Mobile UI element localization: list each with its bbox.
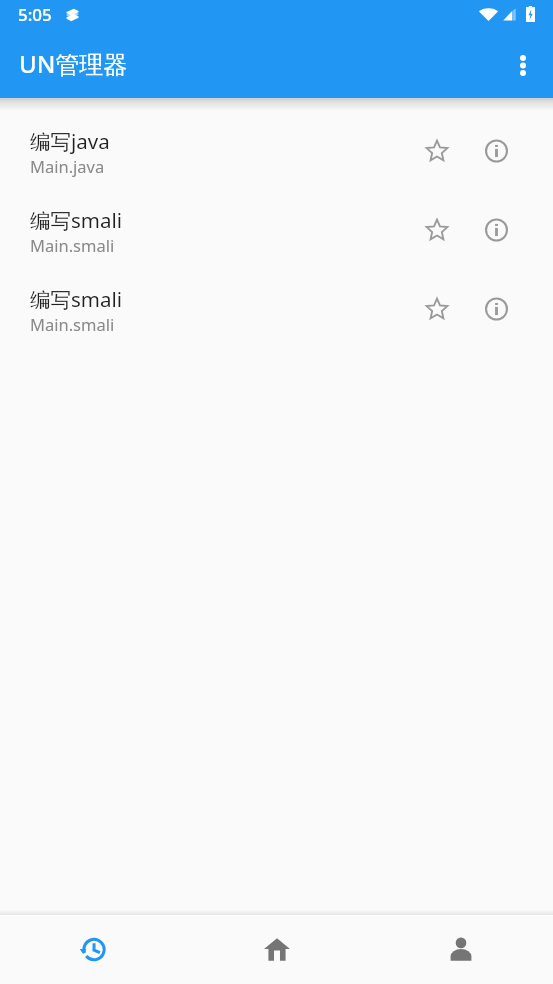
staticText: Main.smali bbox=[30, 313, 115, 335]
button[interactable]: Favorite bbox=[413, 207, 461, 255]
button[interactable]: History bbox=[0, 916, 185, 982]
staticText: 编写smali bbox=[30, 285, 123, 313]
button[interactable]: Profile bbox=[369, 916, 553, 982]
button[interactable]: Info bbox=[473, 128, 521, 176]
button[interactable]: More options bbox=[499, 41, 547, 89]
staticText: 编写java bbox=[30, 127, 110, 155]
button[interactable]: Info bbox=[473, 207, 521, 255]
button[interactable]: Info bbox=[473, 286, 521, 334]
button[interactable]: Favorite bbox=[413, 128, 461, 176]
staticText: Main.java bbox=[30, 155, 105, 177]
staticText: Main.smali bbox=[30, 234, 115, 256]
button[interactable]: Home bbox=[185, 916, 369, 982]
button[interactable]: 编写smali bbox=[0, 191, 553, 270]
staticText: UN管理器 bbox=[19, 47, 128, 80]
staticText: 编写smali bbox=[30, 206, 123, 234]
staticText: 5:05 bbox=[18, 3, 52, 26]
button[interactable]: 编写smali bbox=[0, 270, 553, 349]
button[interactable]: 编写java bbox=[0, 112, 553, 191]
button[interactable]: Favorite bbox=[413, 286, 461, 334]
